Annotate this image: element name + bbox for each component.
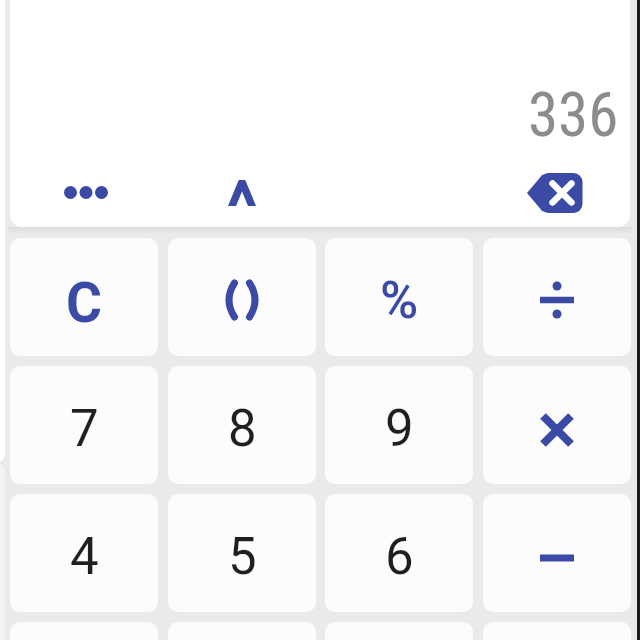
button[interactable]: 8 — [168, 366, 316, 484]
button[interactable]: % — [325, 238, 473, 356]
button[interactable]: 6 — [325, 494, 473, 612]
button[interactable] — [168, 238, 316, 356]
button[interactable] — [56, 178, 116, 208]
staticText: 336 — [528, 79, 619, 150]
staticText: 8 — [228, 399, 257, 459]
staticText: % — [380, 270, 419, 331]
button[interactable] — [483, 494, 631, 612]
staticText: 5 — [228, 527, 257, 587]
button[interactable]: 9 — [325, 366, 473, 484]
staticText: C — [66, 271, 103, 335]
button[interactable]: 4 — [10, 494, 158, 612]
staticText: 4 — [70, 527, 99, 587]
staticText: 9 — [385, 399, 414, 459]
button[interactable] — [224, 172, 260, 212]
button[interactable] — [524, 168, 586, 216]
staticText: 6 — [385, 527, 414, 587]
button[interactable]: C — [10, 238, 158, 356]
staticText: 7 — [70, 399, 99, 459]
button[interactable]: 5 — [168, 494, 316, 612]
button[interactable]: 7 — [10, 366, 158, 484]
button[interactable] — [483, 366, 631, 484]
button[interactable] — [483, 238, 631, 356]
